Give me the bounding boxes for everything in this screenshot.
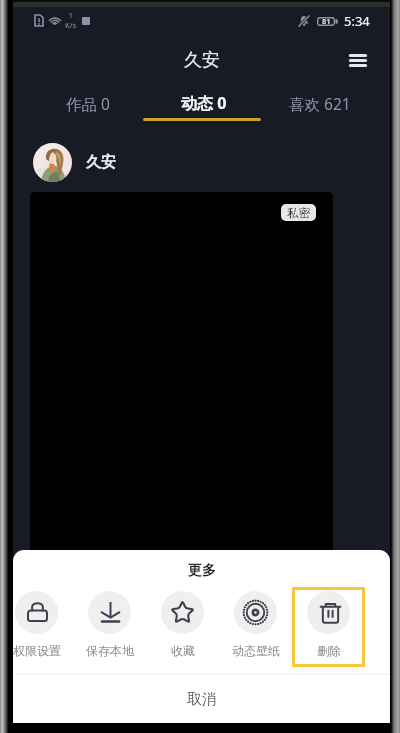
staticText: 81: [322, 16, 331, 26]
button[interactable]: 权限设置: [13, 587, 73, 667]
button[interactable]: 动态 0: [146, 86, 262, 120]
button[interactable]: 私密: [281, 204, 316, 221]
staticText: K/s: [65, 20, 77, 30]
staticText: 5:34: [344, 12, 370, 30]
button[interactable]: 保存本地: [73, 587, 146, 667]
staticText: 删除: [317, 643, 341, 658]
button[interactable]: Menu: [340, 42, 376, 78]
button[interactable]: 删除: [292, 587, 365, 667]
button[interactable]: 收藏: [146, 587, 219, 667]
staticText: 喜欢 621: [289, 93, 351, 114]
staticText: 权限设置: [13, 643, 61, 658]
staticText: 更多: [188, 562, 216, 580]
staticText: 私密: [287, 206, 310, 220]
button[interactable]: 喜欢 621: [262, 86, 378, 120]
staticText: 保存本地: [86, 643, 134, 658]
staticText: 久安: [184, 49, 220, 72]
button[interactable]: 作品 0: [29, 86, 146, 120]
staticText: 作品 0: [66, 93, 110, 114]
button[interactable]: 动态壁纸: [219, 587, 292, 667]
staticText: 收藏: [171, 643, 195, 658]
staticText: 取消: [187, 690, 217, 709]
button[interactable]: 取消: [13, 675, 390, 723]
staticText: 1: [69, 11, 73, 20]
staticText: 动态 0: [181, 92, 227, 114]
staticText: 久安: [86, 153, 116, 172]
staticText: 动态壁纸: [232, 643, 280, 658]
